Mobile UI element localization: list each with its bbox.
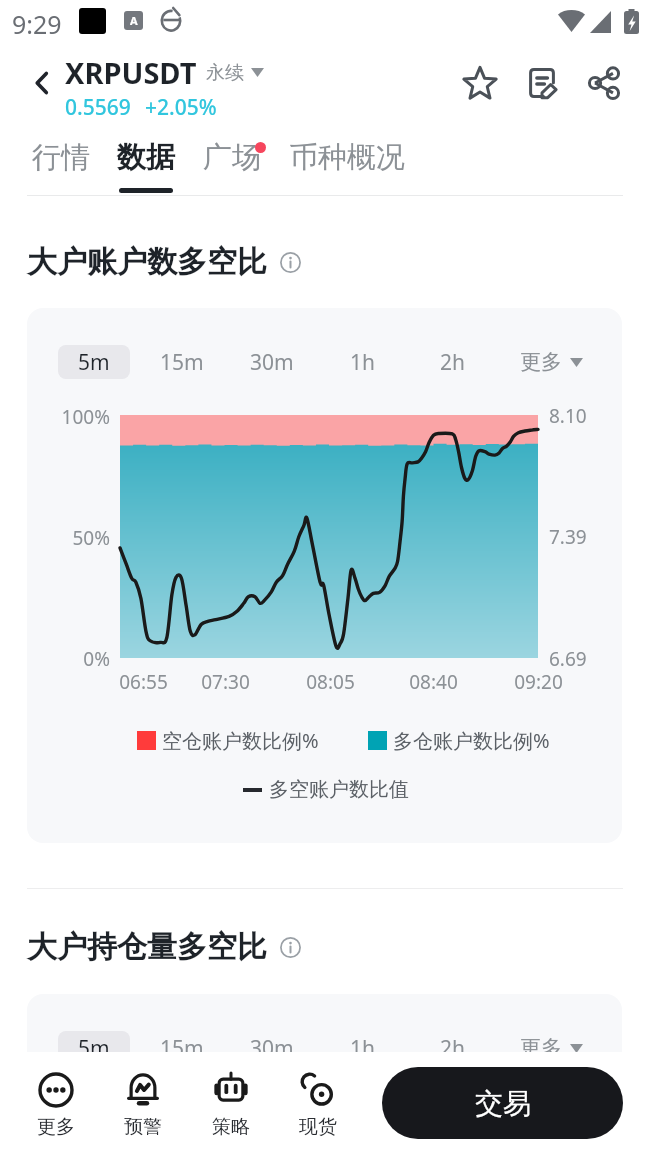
button[interactable]: Share <box>580 59 628 107</box>
staticText: 更多 <box>37 1115 75 1139</box>
button[interactable]: Back <box>22 63 62 103</box>
staticText: 多仓账户数比例% <box>393 727 550 754</box>
staticText: 08:40 <box>409 669 458 695</box>
button[interactable]: 15m <box>150 345 214 379</box>
staticText: 30m <box>250 1034 294 1063</box>
staticText: 0.5569 <box>65 93 131 119</box>
staticText: 广场 <box>203 139 261 176</box>
button[interactable]: 数据 <box>117 139 175 193</box>
button[interactable]: 币种概况 <box>289 139 405 176</box>
staticText: 5m <box>78 348 110 377</box>
button[interactable]: 预警 <box>100 1072 186 1139</box>
staticText: 更多 <box>520 349 562 375</box>
staticText: 现货 <box>299 1115 337 1139</box>
staticText: 预警 <box>124 1115 162 1139</box>
staticText: 行情 <box>32 139 90 176</box>
staticText: 8.10 <box>549 403 622 429</box>
staticText: 06:55 <box>119 669 168 695</box>
staticText: 1h <box>350 348 375 377</box>
button[interactable]: 策略 <box>188 1072 274 1139</box>
button[interactable]: 5m <box>58 1031 130 1065</box>
button[interactable]: 2h <box>426 345 478 379</box>
staticText: 币种概况 <box>289 139 405 176</box>
staticText: XRPUSDT <box>65 53 197 92</box>
button[interactable]: 交易 <box>382 1067 623 1139</box>
staticText: 08:05 <box>306 669 355 695</box>
staticText: 2h <box>440 1034 465 1063</box>
button[interactable]: 现货 <box>275 1072 361 1139</box>
button[interactable]: 2h <box>426 1031 478 1065</box>
staticText: 多空账户数比值 <box>269 777 409 802</box>
button[interactable]: Info <box>277 934 303 960</box>
staticText: 07:30 <box>201 669 250 695</box>
staticText: 09:20 <box>514 669 563 695</box>
button[interactable]: 30m <box>240 1031 304 1065</box>
button[interactable]: 广场 <box>203 139 261 176</box>
button[interactable]: 更多 <box>13 1072 99 1139</box>
staticText: 更多 <box>520 1035 562 1061</box>
staticText: 交易 <box>475 1086 531 1121</box>
staticText: 6.69 <box>549 646 622 672</box>
button[interactable]: 30m <box>240 345 304 379</box>
staticText: +2.05% <box>145 93 217 119</box>
button[interactable]: 多空账户数比值 <box>243 777 409 802</box>
staticText: 2h <box>440 348 465 377</box>
button[interactable]: 空仓账户数比例% <box>137 727 319 754</box>
staticText: 30m <box>250 348 294 377</box>
button[interactable]: 更多 <box>520 1031 583 1065</box>
button[interactable]: 1h <box>336 1031 388 1065</box>
staticText: 永续 <box>206 61 244 85</box>
staticText: 空仓账户数比例% <box>162 727 319 754</box>
staticText: A <box>130 13 138 28</box>
staticText: 15m <box>160 1034 204 1063</box>
staticText: 大户持仓量多空比 <box>27 928 267 966</box>
staticText: 大户账户数多空比 <box>27 243 267 281</box>
staticText: 1h <box>350 1034 375 1063</box>
staticText: 100% <box>30 404 110 430</box>
staticText: 数据 <box>117 139 175 176</box>
button[interactable]: Notes <box>518 59 566 107</box>
staticText: 9:29 <box>12 7 62 41</box>
staticText: 0% <box>30 646 110 672</box>
staticText: 策略 <box>212 1115 250 1139</box>
button[interactable]: 多仓账户数比例% <box>368 727 550 754</box>
button[interactable]: 5m <box>58 345 130 379</box>
staticText: 50% <box>30 525 110 551</box>
button[interactable]: Info <box>277 249 303 275</box>
button[interactable]: Favorite <box>456 59 504 107</box>
staticText: 7.39 <box>549 524 622 550</box>
button[interactable]: 15m <box>150 1031 214 1065</box>
staticText: 15m <box>160 348 204 377</box>
staticText: 5m <box>78 1034 110 1063</box>
button[interactable]: 行情 <box>32 139 90 176</box>
button[interactable]: 1h <box>336 345 388 379</box>
button[interactable]: 更多 <box>520 345 583 379</box>
